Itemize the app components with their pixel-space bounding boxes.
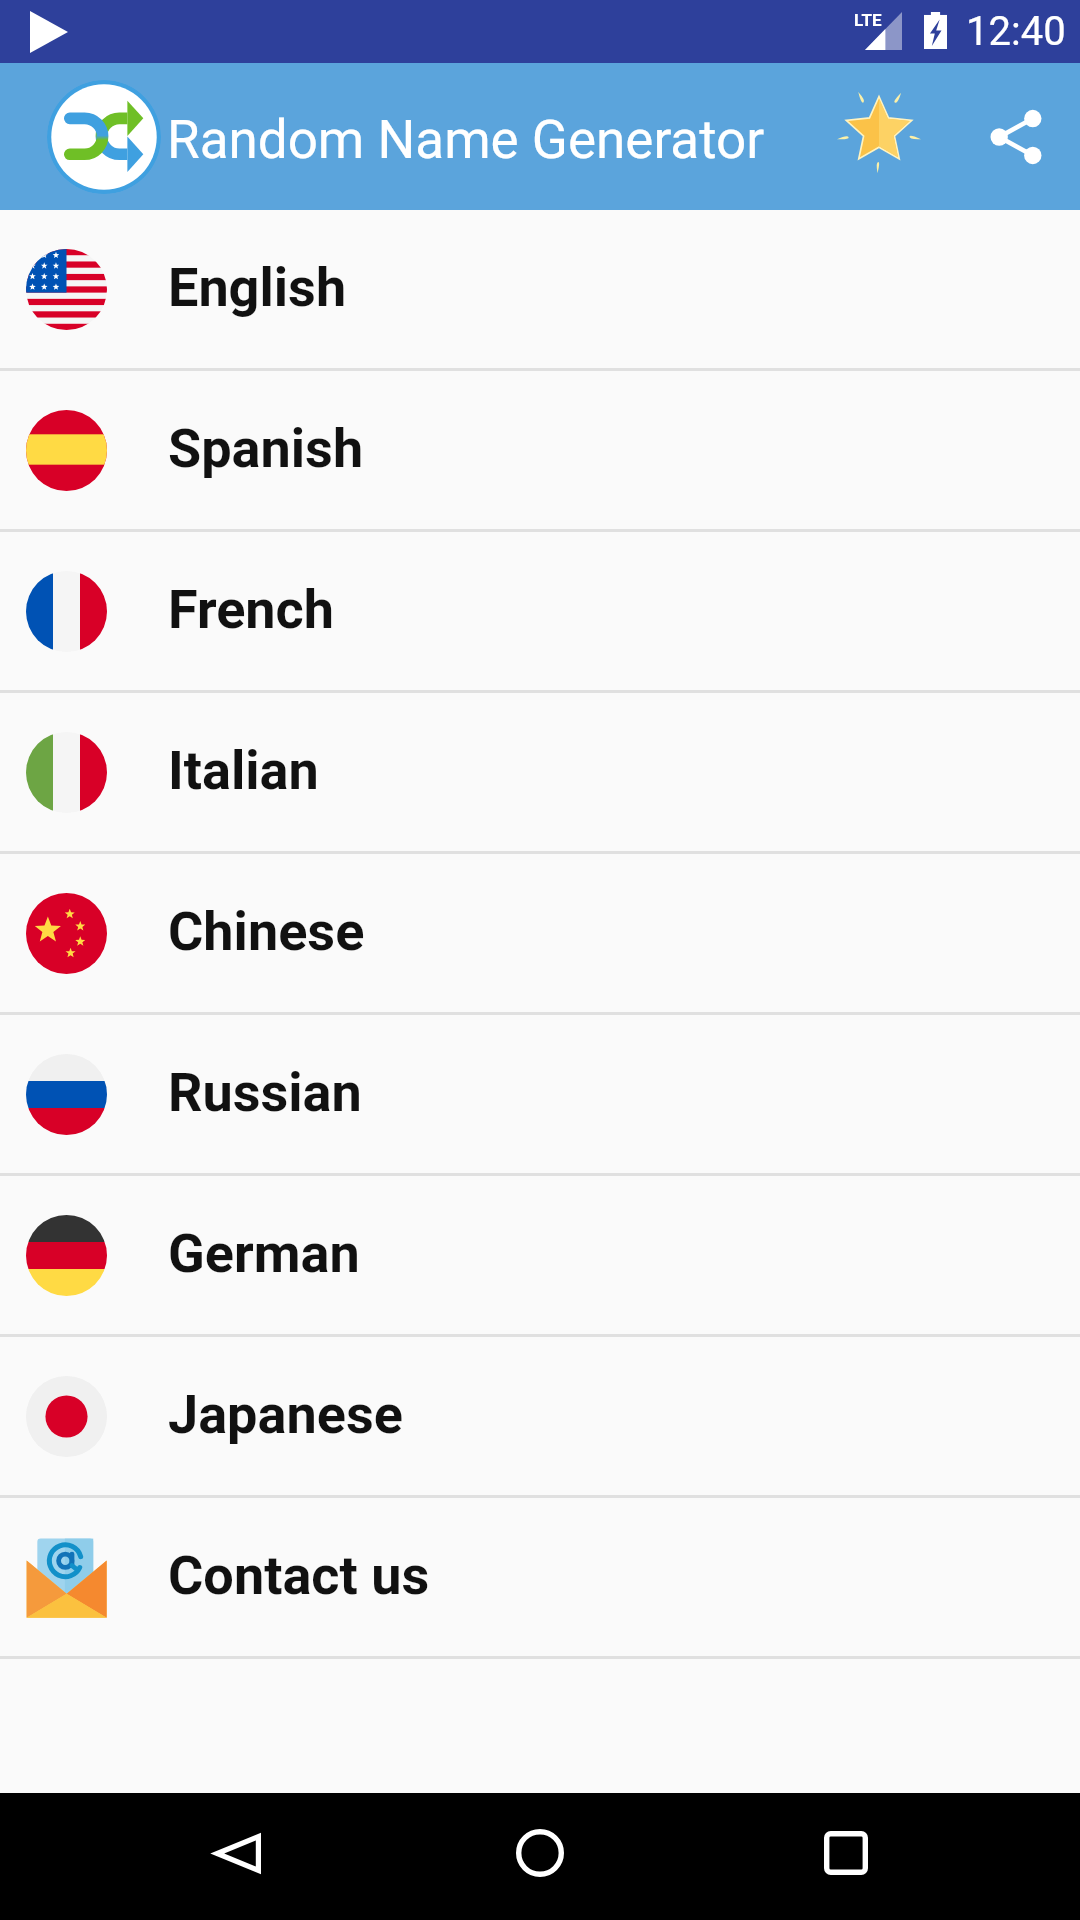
button[interactable]: Russian	[0, 1015, 1080, 1173]
button[interactable]: Share	[960, 81, 1071, 192]
button[interactable]: French	[0, 532, 1080, 690]
button[interactable]: Contact us	[0, 1498, 1080, 1656]
button[interactable]: Recents	[786, 1793, 906, 1913]
button[interactable]: Italian	[0, 693, 1080, 851]
staticText: Random Name Generator	[167, 109, 765, 171]
button[interactable]: Home	[480, 1793, 600, 1913]
staticText: Contact us	[168, 1544, 430, 1607]
button[interactable]: English	[0, 210, 1080, 368]
button[interactable]: Rate app	[819, 77, 939, 197]
button[interactable]: Back	[177, 1793, 297, 1913]
staticText: LTE	[854, 10, 882, 30]
staticText: Italian	[168, 739, 319, 802]
staticText: 12:40	[966, 8, 1066, 55]
staticText: Spanish	[168, 417, 364, 480]
staticText: French	[168, 578, 335, 641]
staticText: Chinese	[168, 900, 365, 963]
button[interactable]: German	[0, 1176, 1080, 1334]
button[interactable]: App logo	[47, 80, 161, 194]
button[interactable]: Chinese	[0, 854, 1080, 1012]
staticText: English	[168, 256, 347, 319]
button[interactable]: Japanese	[0, 1337, 1080, 1495]
staticText: Japanese	[168, 1383, 403, 1446]
button[interactable]: Spanish	[0, 371, 1080, 529]
staticText: German	[168, 1222, 360, 1285]
staticText: Russian	[168, 1061, 362, 1124]
